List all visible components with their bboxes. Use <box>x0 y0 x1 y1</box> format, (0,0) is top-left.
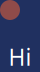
staticText: Hi <box>8 42 31 72</box>
